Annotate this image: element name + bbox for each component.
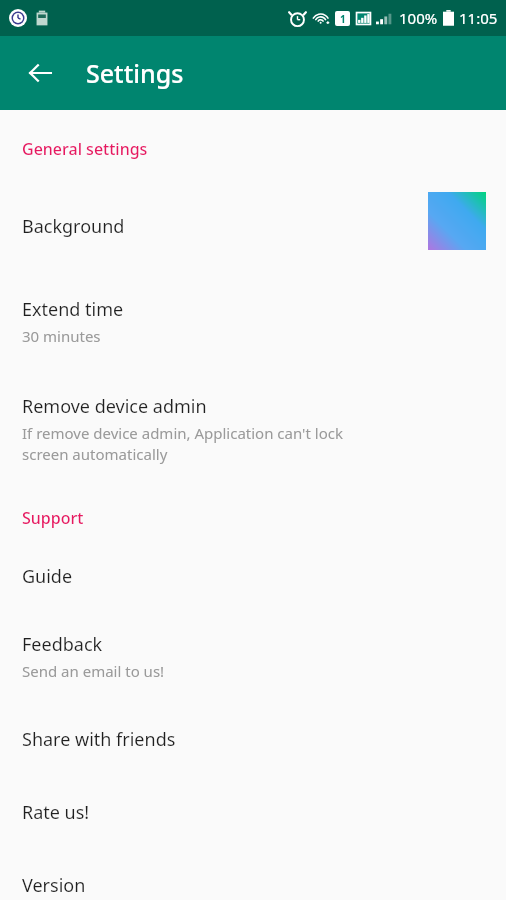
staticText: Version	[22, 873, 86, 898]
staticText: Rate us!	[22, 800, 90, 825]
button[interactable]: Remove device admin	[0, 346, 506, 465]
staticText: Background	[22, 214, 125, 239]
staticText: Support	[22, 507, 506, 529]
staticText: Remove device admin	[22, 394, 207, 419]
staticText: If remove device admin, Application can'…	[22, 423, 343, 465]
staticText: Settings	[86, 56, 184, 90]
staticText: General settings	[22, 138, 506, 160]
button[interactable]: Rate us!	[0, 752, 506, 825]
staticText: Extend time	[22, 297, 124, 322]
button[interactable]: Feedback	[0, 589, 506, 681]
staticText: Feedback	[22, 632, 103, 657]
button[interactable]: Background	[0, 160, 506, 255]
staticText: 1	[340, 12, 346, 26]
staticText: 11:05	[459, 8, 498, 28]
staticText: Send an email to us!	[22, 661, 165, 681]
button[interactable]: Share with friends	[0, 681, 506, 752]
staticText: 30 minutes	[22, 326, 101, 346]
button[interactable]: Guide	[0, 529, 506, 589]
button[interactable]: Version	[0, 825, 506, 898]
staticText: 100%	[399, 8, 438, 28]
staticText: Share with friends	[22, 727, 176, 752]
button[interactable]: Extend time	[0, 255, 506, 346]
staticText: Guide	[22, 564, 73, 589]
button[interactable]: Back	[15, 48, 65, 98]
